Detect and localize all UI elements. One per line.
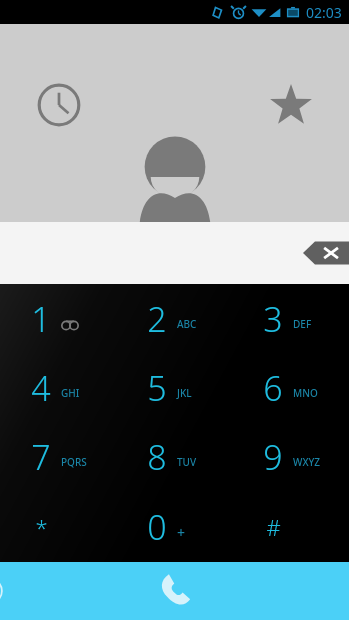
button[interactable]: Call [117,562,233,620]
button[interactable]: Recents [0,24,117,222]
staticText: JKL [177,386,192,400]
button[interactable]: 3 [233,284,349,353]
button[interactable]: 5 [117,353,233,422]
staticText: 02:03 [306,3,342,22]
button[interactable]: # [233,492,349,562]
button[interactable]: 2 [117,284,233,353]
staticText: 5 [147,365,167,411]
button[interactable]: 9 [233,422,349,492]
staticText: 9 [263,434,283,480]
staticText: * [35,512,48,542]
button[interactable]: Call history [0,562,117,620]
button[interactable]: 7 [0,422,117,492]
staticText: PQRS [61,455,87,469]
staticText: DEF [293,317,312,331]
button[interactable]: Contacts [117,24,233,222]
button[interactable]: 4 [0,353,117,422]
button[interactable]: 0 [117,492,233,562]
button[interactable]: Backspace [303,240,349,266]
staticText: 1 [31,296,51,342]
staticText: 6 [263,365,283,411]
staticText: 2 [147,296,167,342]
button[interactable]: 8 [117,422,233,492]
button[interactable]: 6 [233,353,349,422]
button[interactable]: Favorites [233,24,349,222]
button[interactable]: 1 [0,284,117,353]
staticText: WXYZ [293,455,321,469]
staticText: # [266,512,281,542]
staticText: 8 [147,434,167,480]
staticText: 4 [31,365,51,411]
staticText: GHI [61,386,80,400]
staticText: 7 [31,434,51,480]
staticText: MNO [293,386,318,400]
staticText: TUV [177,455,197,469]
staticText: 0 [147,504,167,550]
staticText: 3 [263,296,283,342]
staticText: + [177,523,186,542]
button[interactable]: * [0,492,117,562]
staticText: ABC [177,317,197,331]
